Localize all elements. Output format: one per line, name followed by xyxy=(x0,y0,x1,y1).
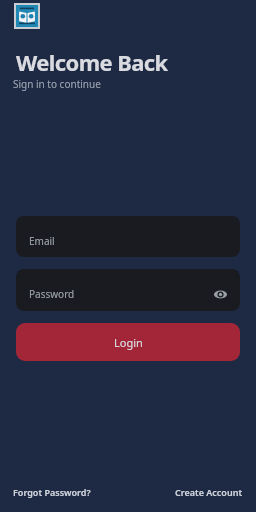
staticText: Login xyxy=(114,335,143,350)
button[interactable]: Login xyxy=(16,323,240,361)
staticText: Sign in to continue xyxy=(13,77,101,91)
button[interactable] xyxy=(16,5,38,27)
staticText: Email xyxy=(29,234,55,248)
button[interactable]: Email xyxy=(16,216,240,257)
button[interactable]: Create Account xyxy=(175,486,243,498)
staticText: Password xyxy=(29,287,75,301)
button[interactable]: Forgot Password? xyxy=(13,486,91,498)
button[interactable]: Password xyxy=(16,269,240,311)
staticText: Welcome Back xyxy=(16,47,168,77)
